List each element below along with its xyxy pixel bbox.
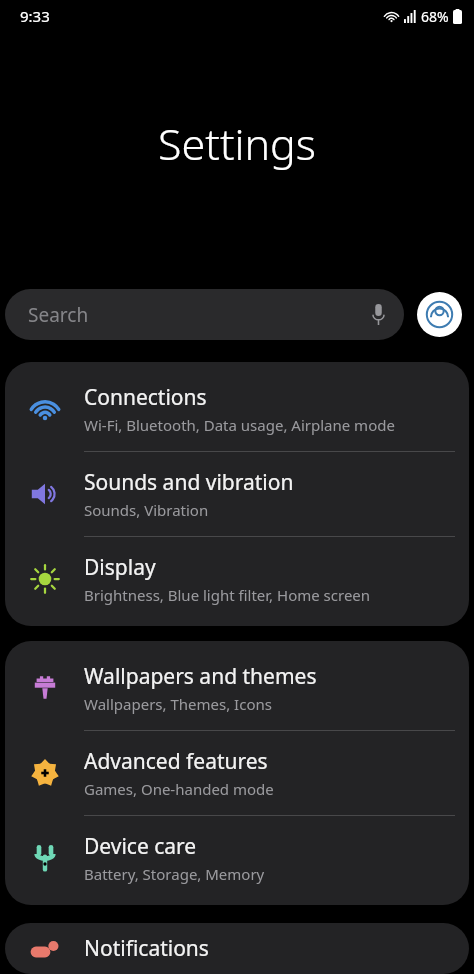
staticText: Advanced features	[84, 747, 268, 776]
button[interactable]: Display	[5, 537, 469, 621]
staticText: Display	[84, 553, 156, 582]
staticText: Notifications	[84, 934, 209, 963]
staticText: Brightness, Blue light filter, Home scre…	[84, 585, 371, 605]
button[interactable]: Search	[5, 289, 404, 340]
staticText: Connections	[84, 383, 207, 412]
staticText: Wallpapers and themes	[84, 662, 317, 691]
staticText: Sounds and vibration	[84, 468, 294, 497]
button[interactable]: Notifications	[5, 923, 469, 974]
staticText: Search	[28, 302, 358, 328]
staticText: 9:33	[20, 6, 50, 26]
button[interactable]: Account	[417, 292, 462, 337]
button[interactable]: Advanced features	[5, 731, 469, 815]
staticText: Device care	[84, 832, 197, 861]
staticText: Sounds, Vibration	[84, 500, 209, 520]
staticText: Settings	[0, 114, 474, 173]
button[interactable]: Device care	[5, 816, 469, 900]
button[interactable]: Connections	[5, 367, 469, 451]
button[interactable]: Sounds and vibration	[5, 452, 469, 536]
staticText: Wi-Fi, Bluetooth, Data usage, Airplane m…	[84, 415, 395, 435]
button[interactable]: Voice search	[358, 295, 398, 335]
button[interactable]: Wallpapers and themes	[5, 646, 469, 730]
staticText: Battery, Storage, Memory	[84, 864, 265, 884]
staticText: Games, One-handed mode	[84, 779, 274, 799]
staticText: 68%	[421, 7, 449, 26]
staticText: Wallpapers, Themes, Icons	[84, 694, 272, 714]
